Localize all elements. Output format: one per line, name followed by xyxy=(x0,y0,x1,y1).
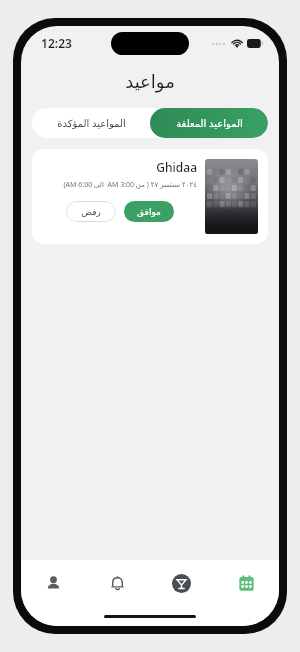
button[interactable]: Ghidaa xyxy=(32,149,268,244)
staticText: مواعيد xyxy=(125,71,175,92)
button[interactable]: Notifications xyxy=(85,560,149,606)
button[interactable]: Profile xyxy=(21,560,85,606)
staticText: Ghidaa xyxy=(42,159,197,175)
button[interactable]: رفض xyxy=(66,201,116,222)
button[interactable]: Services xyxy=(149,560,214,606)
staticText: (AM 6:00 الى AM 3:00 من ) ٢٠٢٤ سبتمبر ٢٧ xyxy=(42,180,197,190)
staticText: رفض xyxy=(81,207,101,217)
staticText: 12:23 xyxy=(41,35,72,51)
button[interactable]: Appointments xyxy=(214,560,279,606)
button[interactable]: المواعيد المؤكدة xyxy=(32,108,150,138)
staticText: المواعيد المعلقة xyxy=(176,116,243,130)
staticText: موافق xyxy=(137,207,161,217)
button[interactable]: المواعيد المعلقة xyxy=(150,108,268,138)
button[interactable]: موافق xyxy=(124,201,174,222)
staticText: المواعيد المؤكدة xyxy=(57,116,126,130)
